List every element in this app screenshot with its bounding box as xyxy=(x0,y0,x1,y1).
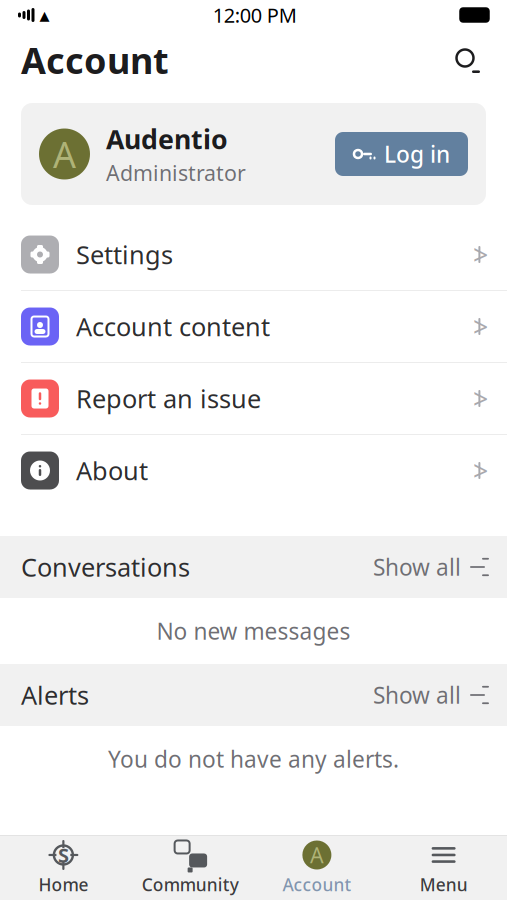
staticText: You do not have any alerts. xyxy=(108,744,399,774)
staticText: ▴ xyxy=(39,4,49,26)
staticText: Home xyxy=(38,873,88,896)
staticText: Log in xyxy=(384,139,450,169)
staticText: About xyxy=(76,454,148,487)
button[interactable]: Show all xyxy=(373,546,486,588)
staticText: Alerts xyxy=(21,678,89,712)
staticText: Account xyxy=(282,873,351,896)
staticText: 12:00 PM xyxy=(213,2,297,28)
button[interactable]: S xyxy=(0,834,127,900)
button[interactable]: Show all xyxy=(373,674,486,716)
staticText: Report an issue xyxy=(76,382,261,415)
button[interactable]: Community xyxy=(127,834,254,900)
staticText: Menu xyxy=(420,873,468,896)
button[interactable]: Settings xyxy=(0,219,507,290)
button[interactable]: A xyxy=(253,834,380,900)
staticText: A xyxy=(53,130,76,178)
staticText: Community xyxy=(142,873,239,896)
button[interactable]: Report an issue xyxy=(0,363,507,434)
staticText: Show all xyxy=(373,552,461,582)
staticText: > xyxy=(473,453,488,488)
button[interactable]: Log in xyxy=(335,132,468,176)
staticText: Show all xyxy=(373,680,461,710)
staticText: Account xyxy=(21,36,169,84)
staticText: > xyxy=(473,381,488,416)
staticText: > xyxy=(473,237,488,272)
staticText: Audentio xyxy=(106,121,228,156)
button[interactable]: Search xyxy=(448,41,486,79)
button[interactable]: Account content xyxy=(0,291,507,362)
staticText: A xyxy=(310,841,324,869)
staticText: Account content xyxy=(76,310,270,343)
staticText: Conversations xyxy=(21,550,190,584)
staticText: > xyxy=(473,309,488,344)
staticText: Settings xyxy=(76,238,173,271)
button[interactable]: Menu xyxy=(380,834,507,900)
button[interactable]: About xyxy=(0,435,507,506)
staticText: S xyxy=(58,842,69,868)
staticText: Administrator xyxy=(106,158,246,187)
staticText: No new messages xyxy=(156,616,350,646)
